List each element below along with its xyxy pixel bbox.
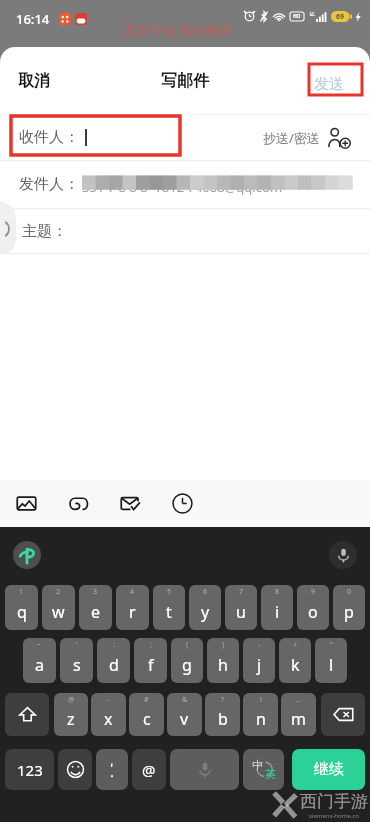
button[interactable]: 8 [261, 585, 293, 630]
button[interactable]: Mail template [104, 480, 156, 527]
staticText: w [52, 601, 65, 623]
button[interactable]: ? [205, 693, 240, 736]
button[interactable]: Backspace [321, 693, 365, 736]
staticText: : [113, 640, 115, 650]
staticText: v [180, 708, 189, 730]
staticText: 发件人： [19, 175, 79, 194]
staticText: 2 [56, 587, 61, 597]
staticText: 1 [19, 587, 24, 597]
button[interactable]: ) [207, 638, 239, 683]
staticText: 取消 [18, 71, 50, 91]
staticText: c [143, 708, 151, 730]
button[interactable]: 123 [5, 749, 54, 790]
button[interactable]: ' [60, 638, 93, 683]
staticText: r [129, 601, 136, 623]
staticText: 中 [252, 758, 263, 772]
button[interactable]: 6 [189, 585, 221, 630]
staticText: - [258, 640, 261, 650]
staticText: t [166, 601, 172, 623]
button[interactable]: # [129, 693, 164, 736]
staticText: ) [222, 640, 225, 650]
staticText: a [35, 654, 44, 676]
staticText: @ [68, 695, 75, 705]
staticText: n [256, 708, 266, 730]
staticText: e [91, 601, 101, 623]
button[interactable]: 2 [42, 585, 75, 630]
staticText: / [294, 640, 297, 650]
button[interactable]: 3 [79, 585, 112, 630]
staticText: … [296, 695, 302, 705]
staticText: 6 [203, 587, 208, 597]
staticText: 西门手游 [300, 791, 368, 812]
staticText: i [275, 601, 280, 623]
button[interactable]: ( [171, 638, 203, 683]
staticText: 16:14 [16, 10, 50, 28]
staticText: 4 [130, 587, 135, 597]
button[interactable]: Signature [52, 480, 104, 527]
button[interactable]: Switch language [243, 749, 284, 790]
button[interactable]: ; [134, 638, 167, 683]
button[interactable]: 0 [333, 585, 365, 630]
button[interactable]: Emoji [58, 749, 92, 790]
button[interactable]: 发送 [306, 66, 352, 103]
staticText: ( [186, 640, 189, 650]
button[interactable]: Schedule send [156, 480, 208, 527]
button[interactable]: - [91, 693, 126, 736]
button[interactable]: @ [54, 693, 88, 736]
staticText: 9 [311, 587, 316, 597]
button[interactable]: 7 [225, 585, 257, 630]
button[interactable]: 继续 [292, 749, 365, 790]
button[interactable]: … [281, 693, 316, 736]
staticText: ; [150, 640, 152, 650]
staticText: b [218, 708, 228, 730]
button[interactable]: @ [132, 749, 166, 790]
staticText: y [201, 601, 210, 623]
button[interactable]: Input method [13, 541, 41, 569]
staticText: 69 [336, 12, 345, 22]
button[interactable]: Voice input [329, 541, 357, 569]
staticText: siemens-home.cn [309, 812, 359, 820]
staticText: m [291, 708, 306, 730]
staticText: u [236, 601, 246, 623]
staticText: f [148, 654, 154, 676]
staticText: 7 [239, 587, 244, 597]
button[interactable]: 1 [5, 585, 38, 630]
staticText: 羞羞答答 痴痴傻傻 [124, 21, 232, 39]
staticText: s [73, 654, 81, 676]
button[interactable]: 抄送/密送 [263, 126, 351, 150]
staticText: z [67, 708, 75, 730]
button[interactable]: Shift [5, 693, 49, 736]
staticText: 写邮件 [161, 71, 209, 91]
button[interactable]: & [167, 693, 202, 736]
staticText: ? [221, 695, 225, 705]
staticText: o [308, 601, 318, 623]
staticText: # [144, 695, 149, 705]
button[interactable] [96, 749, 128, 790]
staticText: 8 [275, 587, 280, 597]
button[interactable]: 4 [116, 585, 149, 630]
staticText: & [182, 695, 188, 705]
button[interactable]: : [97, 638, 130, 683]
staticText: 抄送/密送 [263, 129, 320, 147]
staticText: " [330, 640, 333, 650]
staticText: g [182, 654, 192, 676]
button[interactable]: 9 [297, 585, 329, 630]
button[interactable]: ~ [23, 638, 56, 683]
staticText: 主题： [22, 222, 67, 241]
staticText: ~ [37, 640, 42, 650]
button[interactable]: - [243, 638, 275, 683]
button[interactable]: / [279, 638, 311, 683]
button[interactable]: " [315, 638, 347, 683]
button[interactable]: 5 [153, 585, 185, 630]
staticText: 0 [347, 587, 352, 597]
button[interactable]: ! [243, 693, 278, 736]
staticText: 123 [17, 760, 43, 780]
staticText: l [329, 654, 334, 676]
button[interactable]: 取消 [10, 62, 58, 100]
staticText: 3 [93, 587, 98, 597]
button[interactable]: Insert image [0, 480, 52, 527]
button[interactable]: Open drawer [0, 202, 16, 255]
button[interactable]: Space [170, 749, 239, 790]
staticText: 351 7 8 8 8 1812 74088@qq.com [82, 178, 283, 196]
staticText: 5 [167, 587, 172, 597]
